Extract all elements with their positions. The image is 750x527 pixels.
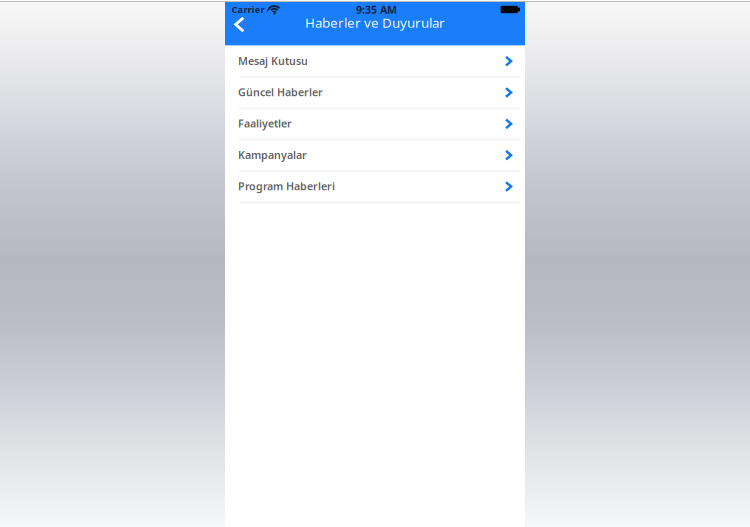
staticText: Program Haberleri [238, 179, 335, 193]
button[interactable]: Program Haberleri [225, 171, 525, 202]
staticText: Mesaj Kutusu [238, 54, 308, 68]
button[interactable]: Back [228, 14, 250, 34]
button[interactable]: Güncel Haberler [225, 77, 525, 108]
button[interactable]: Kampanyalar [225, 139, 525, 171]
button[interactable]: Mesaj Kutusu [225, 45, 525, 77]
button[interactable]: Faaliyetler [225, 108, 525, 139]
staticText: Güncel Haberler [238, 85, 323, 99]
staticText: Carrier [231, 3, 264, 16]
staticText: Haberler ve Duyurular [305, 14, 445, 31]
staticText: 9:35 AM [356, 2, 397, 17]
staticText: Kampanyalar [238, 148, 307, 162]
staticText: Faaliyetler [238, 116, 292, 131]
